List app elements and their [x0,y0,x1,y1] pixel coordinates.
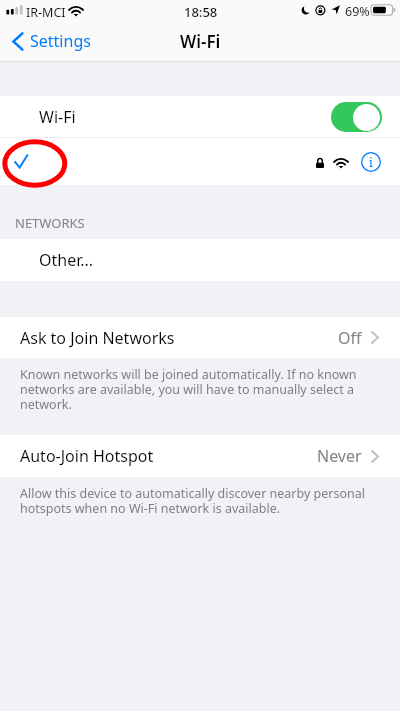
staticText: Ask to Join Networks [20,327,175,349]
staticText: i [369,154,373,170]
staticText: IR-MCI [26,4,66,21]
button[interactable]: Settings [0,30,99,52]
staticText: Auto-Join Hotspot [20,445,154,467]
staticText: Wi-Fi [180,30,221,53]
staticText: Off [338,327,362,349]
staticText: NETWORKS [15,214,85,232]
button[interactable]: Ask to Join Networks [0,317,400,358]
staticText: 69% [345,3,370,20]
staticText: Other... [39,249,94,271]
button[interactable]: Wi-Fi [0,96,400,137]
staticText: Never [317,445,362,467]
staticText: 18:58 [184,3,218,21]
button[interactable]: Auto-Join Hotspot [0,435,400,477]
button[interactable]: Other... [0,239,400,281]
button[interactable]: Connected network [0,138,400,185]
button[interactable]: Wi-Fi on [331,102,382,132]
staticText: Allow this device to automatically disco… [20,485,372,517]
staticText: Wi-Fi [39,106,76,128]
staticText: Settings [30,30,91,52]
button[interactable]: Network details [361,152,381,172]
staticText: Known networks will be joined automatica… [20,366,366,413]
